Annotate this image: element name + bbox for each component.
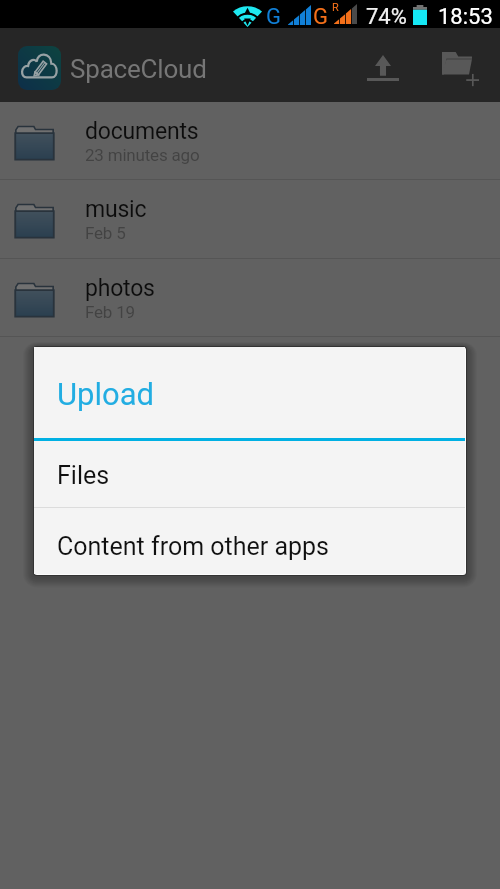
- staticText: G: [313, 4, 328, 30]
- button[interactable]: Upload: [346, 28, 420, 102]
- button[interactable]: music: [0, 180, 500, 258]
- button[interactable]: photos: [0, 259, 500, 336]
- staticText: 74%: [366, 4, 407, 30]
- button[interactable]: SpaceCloud: [18, 28, 207, 72]
- staticText: R: [332, 1, 339, 14]
- button[interactable]: documents: [0, 102, 500, 179]
- staticText: SpaceCloud: [70, 54, 207, 84]
- staticText: documents: [85, 118, 199, 145]
- staticText: Feb 5: [85, 223, 126, 243]
- staticText: Feb 19: [85, 302, 135, 322]
- staticText: G: [266, 4, 281, 30]
- button[interactable]: Files: [34, 441, 465, 507]
- staticText: Content from other apps: [57, 532, 329, 561]
- staticText: 18:53: [438, 4, 493, 30]
- staticText: 23 minutes ago: [85, 145, 200, 165]
- button[interactable]: New folder: [424, 28, 500, 102]
- staticText: music: [85, 196, 147, 223]
- staticText: photos: [85, 275, 155, 302]
- button[interactable]: Content from other apps: [34, 508, 465, 574]
- staticText: Upload: [57, 376, 155, 412]
- staticText: Files: [57, 461, 110, 490]
